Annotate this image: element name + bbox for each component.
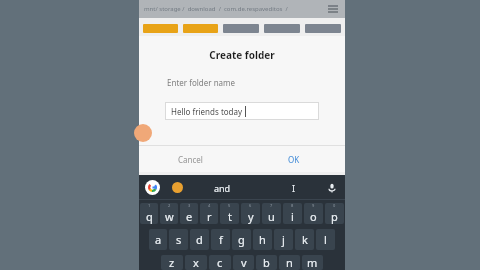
button[interactable]: d — [190, 229, 209, 250]
staticText: 3 — [188, 203, 191, 208]
staticText: 8 — [291, 203, 294, 208]
staticText: Hello friends today — [171, 106, 243, 117]
button[interactable] — [264, 24, 300, 33]
staticText: v — [241, 255, 247, 270]
staticText: x — [193, 255, 199, 270]
staticText: d — [196, 232, 203, 247]
button[interactable]: n — [279, 255, 300, 270]
button[interactable] — [305, 24, 341, 33]
staticText: f — [219, 232, 223, 247]
button[interactable]: and — [214, 182, 231, 194]
button[interactable]: 5 — [220, 203, 239, 224]
button[interactable]: 9 — [304, 203, 323, 224]
staticText: k — [302, 232, 308, 247]
staticText: h — [259, 232, 266, 247]
staticText: OK — [288, 154, 300, 165]
button[interactable]: 3 — [180, 203, 198, 224]
staticText: Enter folder name — [167, 77, 236, 88]
button[interactable] — [143, 24, 178, 33]
button[interactable]: b — [256, 255, 277, 270]
button[interactable]: m — [302, 255, 323, 270]
button[interactable]: Google — [145, 180, 160, 195]
staticText: r — [207, 209, 212, 224]
staticText: Create folder — [139, 48, 345, 62]
button[interactable]: x — [185, 255, 207, 270]
button[interactable]: 6 — [241, 203, 260, 224]
button[interactable]: OK — [242, 146, 345, 172]
button[interactable]: l — [316, 229, 335, 250]
staticText: o — [310, 209, 317, 224]
staticText: y — [248, 209, 254, 224]
staticText: b — [263, 255, 270, 270]
button[interactable]: Menu — [326, 2, 340, 16]
button[interactable]: Voice input — [325, 181, 339, 195]
button[interactable] — [183, 24, 218, 33]
staticText: m — [307, 255, 318, 270]
button[interactable]: k — [295, 229, 314, 250]
staticText: u — [268, 209, 275, 224]
staticText: p — [331, 209, 338, 224]
staticText: Cancel — [178, 154, 203, 165]
staticText: mnt/ storage / download / com.de.respave… — [144, 5, 326, 13]
button[interactable]: 0 — [325, 203, 344, 224]
button[interactable]: Hello friends today — [165, 102, 319, 120]
staticText: w — [165, 209, 174, 224]
button[interactable]: 4 — [200, 203, 218, 224]
staticText: 9 — [312, 203, 315, 208]
staticText: n — [286, 255, 293, 270]
button[interactable]: j — [274, 229, 293, 250]
button[interactable] — [223, 24, 259, 33]
staticText: e — [186, 209, 193, 224]
staticText: t — [228, 209, 232, 224]
staticText: l — [324, 232, 327, 247]
button[interactable]: v — [233, 255, 254, 270]
button[interactable]: h — [253, 229, 272, 250]
button[interactable]: 8 — [283, 203, 302, 224]
staticText: 0 — [333, 203, 336, 208]
button[interactable]: z — [161, 255, 183, 270]
staticText: 7 — [270, 203, 273, 208]
button[interactable]: a — [149, 229, 167, 250]
button[interactable]: s — [169, 229, 188, 250]
button[interactable]: 7 — [262, 203, 281, 224]
button[interactable]: c — [209, 255, 231, 270]
staticText: g — [238, 232, 245, 247]
staticText: 2 — [168, 203, 171, 208]
staticText: z — [169, 255, 175, 270]
staticText: i — [291, 209, 294, 224]
staticText: s — [176, 232, 182, 247]
staticText: a — [155, 232, 162, 247]
staticText: 1 — [148, 203, 151, 208]
staticText: c — [217, 255, 223, 270]
button[interactable]: f — [211, 229, 230, 250]
button[interactable]: g — [232, 229, 251, 250]
button[interactable]: 2 — [160, 203, 178, 224]
staticText: 4 — [208, 203, 211, 208]
staticText: 6 — [249, 203, 252, 208]
staticText: 5 — [228, 203, 231, 208]
button[interactable]: 1 — [140, 203, 158, 224]
button[interactable]: I — [292, 182, 296, 194]
button[interactable]: Cancel — [139, 146, 242, 172]
staticText: q — [146, 209, 153, 224]
staticText: j — [282, 232, 285, 247]
button[interactable]: Emoji — [172, 182, 183, 193]
